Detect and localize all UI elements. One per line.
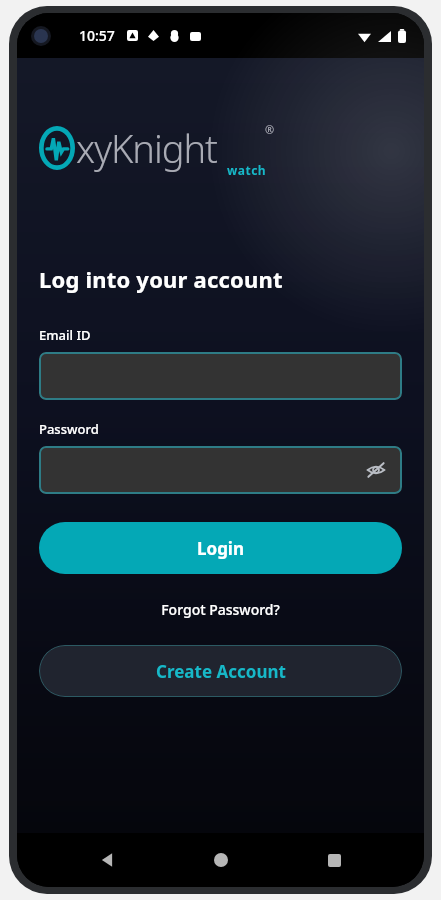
button[interactable]: Show password xyxy=(39,446,402,494)
button[interactable] xyxy=(39,352,402,400)
staticText: Login xyxy=(197,537,245,560)
button[interactable]: Home xyxy=(198,837,244,883)
staticText: Log into your account xyxy=(39,264,283,294)
button[interactable]: Create Account xyxy=(39,645,402,697)
button[interactable]: Login xyxy=(39,522,402,574)
staticText: Email ID xyxy=(39,326,91,344)
staticText: Forgot Password? xyxy=(161,600,280,619)
button[interactable]: Back xyxy=(84,837,130,883)
button[interactable]: Recent apps xyxy=(311,837,357,883)
staticText: 10:57 xyxy=(79,26,115,45)
staticText: ® xyxy=(265,122,275,137)
staticText: Create Account xyxy=(156,660,286,683)
staticText: xyKnight xyxy=(76,122,218,174)
staticText: Password xyxy=(39,420,99,438)
button[interactable]: Forgot Password? xyxy=(151,596,290,623)
staticText: watch xyxy=(227,162,267,178)
other: Show password xyxy=(364,458,388,482)
